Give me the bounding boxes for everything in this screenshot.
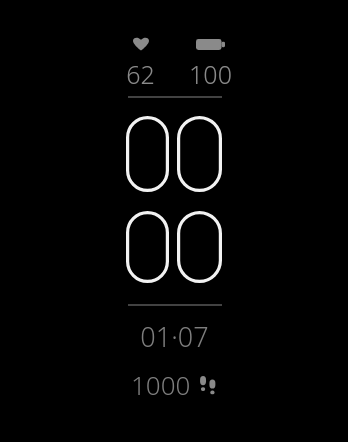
button[interactable]: Time	[126, 116, 222, 283]
staticText: 100	[189, 57, 232, 84]
staticText: 01·07	[140, 318, 209, 354]
button[interactable]: Battery 100 percent	[180, 32, 240, 84]
button[interactable]: 01·07	[114, 318, 234, 354]
button[interactable]: Steps 1000	[104, 366, 244, 402]
button[interactable]: Heart rate 62	[112, 32, 168, 84]
staticText: 1000	[131, 367, 191, 402]
staticText: 62	[126, 57, 155, 84]
